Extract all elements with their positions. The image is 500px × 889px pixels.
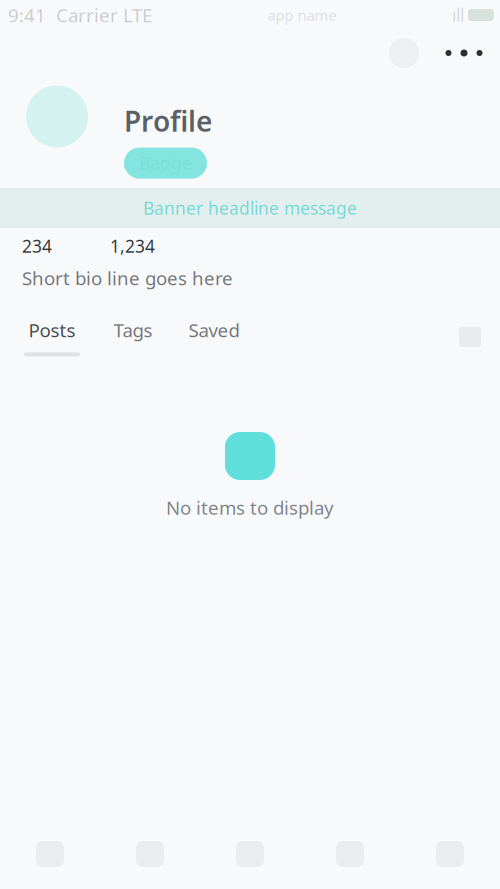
staticText: Posts — [28, 318, 75, 342]
staticText: Badge — [139, 152, 192, 175]
button[interactable]: Profile — [400, 819, 500, 889]
button[interactable]: Grid view — [448, 315, 492, 359]
staticText: Tags — [113, 318, 152, 342]
button[interactable]: Search — [100, 819, 200, 889]
staticText: 234 — [22, 234, 52, 257]
staticText: No items to display — [166, 495, 334, 520]
button[interactable]: 234 — [22, 234, 52, 257]
button[interactable]: Activity — [300, 819, 400, 889]
button[interactable]: Posts — [9, 315, 95, 359]
staticText: Saved — [188, 318, 239, 342]
staticText: Profile — [124, 102, 212, 140]
button[interactable]: Home — [0, 819, 100, 889]
staticText: 9:41 Carrier LTE — [8, 3, 152, 27]
button[interactable]: Create — [200, 819, 300, 889]
button[interactable]: Search — [382, 31, 426, 75]
staticText: Banner headline message — [143, 196, 357, 219]
button[interactable]: More options — [442, 31, 486, 75]
button[interactable]: 1,234 — [110, 234, 155, 257]
staticText: Short bio line goes here — [22, 266, 233, 290]
staticText: ıll — [452, 3, 464, 26]
button[interactable]: Tags — [95, 315, 171, 359]
button[interactable]: Banner headline message — [0, 188, 500, 228]
staticText: app name — [267, 5, 336, 25]
button[interactable]: Saved — [171, 315, 257, 359]
staticText: 1,234 — [110, 234, 155, 257]
